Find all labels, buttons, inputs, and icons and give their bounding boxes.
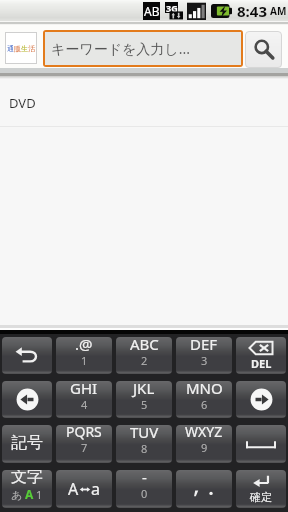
button[interactable]: Undo <box>2 337 52 374</box>
button[interactable]: Search <box>245 31 282 68</box>
button[interactable]: .@ <box>56 337 112 374</box>
staticText: 4 <box>81 397 88 412</box>
staticText: A <box>68 478 79 500</box>
staticText: 記号 <box>11 433 43 453</box>
staticText: 3 <box>201 353 208 368</box>
staticText: 1 <box>81 353 88 368</box>
staticText: キーワードを入力し... <box>51 39 190 58</box>
button[interactable]: MNO <box>176 381 232 418</box>
button[interactable]: PQRS <box>56 425 112 463</box>
staticText: 8 <box>141 441 148 456</box>
button[interactable]: DVD <box>0 79 288 126</box>
staticText: A <box>25 486 34 502</box>
button[interactable]: WXYZ <box>176 425 232 463</box>
staticText: JKL <box>133 381 155 398</box>
staticText: MNO <box>186 381 223 398</box>
staticText: 8:43 <box>237 1 267 21</box>
staticText: 文字 <box>11 470 43 487</box>
staticText: - <box>142 470 147 487</box>
staticText: GHI <box>70 381 98 398</box>
button[interactable]: Cursor right <box>236 381 286 418</box>
button[interactable]: Input mode <box>2 470 52 508</box>
staticText: 1 <box>36 487 43 502</box>
button[interactable]: App icon <box>5 32 37 64</box>
staticText: DEF <box>190 337 218 354</box>
button[interactable]: Punctuation <box>176 470 232 508</box>
button[interactable]: Confirm <box>236 470 286 508</box>
button[interactable]: GHI <box>56 381 112 418</box>
staticText: .@ <box>75 337 93 354</box>
button[interactable]: TUV <box>116 425 172 463</box>
staticText: 7 <box>81 440 88 455</box>
staticText: WXYZ <box>185 425 223 441</box>
staticText: TUV <box>130 425 159 442</box>
button[interactable]: Symbols <box>2 425 52 463</box>
staticText: PQRS <box>66 425 102 441</box>
staticText: AM <box>270 4 287 18</box>
staticText: 2 <box>141 353 148 368</box>
button[interactable]: Cursor left <box>2 381 52 418</box>
staticText: 販 <box>14 44 21 53</box>
staticText: 通 <box>7 44 14 53</box>
staticText: 活 <box>28 44 35 53</box>
staticText: a <box>91 478 100 500</box>
staticText: DVD <box>9 94 36 112</box>
button[interactable]: Space <box>236 425 286 463</box>
staticText: 0 <box>141 486 148 501</box>
staticText: 3G <box>166 2 178 13</box>
button[interactable]: - <box>116 470 172 508</box>
staticText: 9 <box>201 440 208 455</box>
staticText: 生 <box>21 44 28 53</box>
staticText: あ <box>11 488 23 502</box>
staticText: 確定 <box>250 490 272 504</box>
staticText: AB <box>144 3 160 19</box>
staticText: 6 <box>201 397 208 412</box>
staticText: DEL <box>251 356 272 371</box>
button[interactable]: DEF <box>176 337 232 374</box>
button[interactable]: JKL <box>116 381 172 418</box>
button[interactable]: キーワードを入力し... <box>45 32 241 65</box>
button[interactable]: Delete <box>236 337 286 374</box>
staticText: ABC <box>130 337 159 354</box>
button[interactable]: ABC <box>116 337 172 374</box>
button[interactable]: Toggle case <box>56 470 112 508</box>
staticText: 5 <box>141 397 148 412</box>
